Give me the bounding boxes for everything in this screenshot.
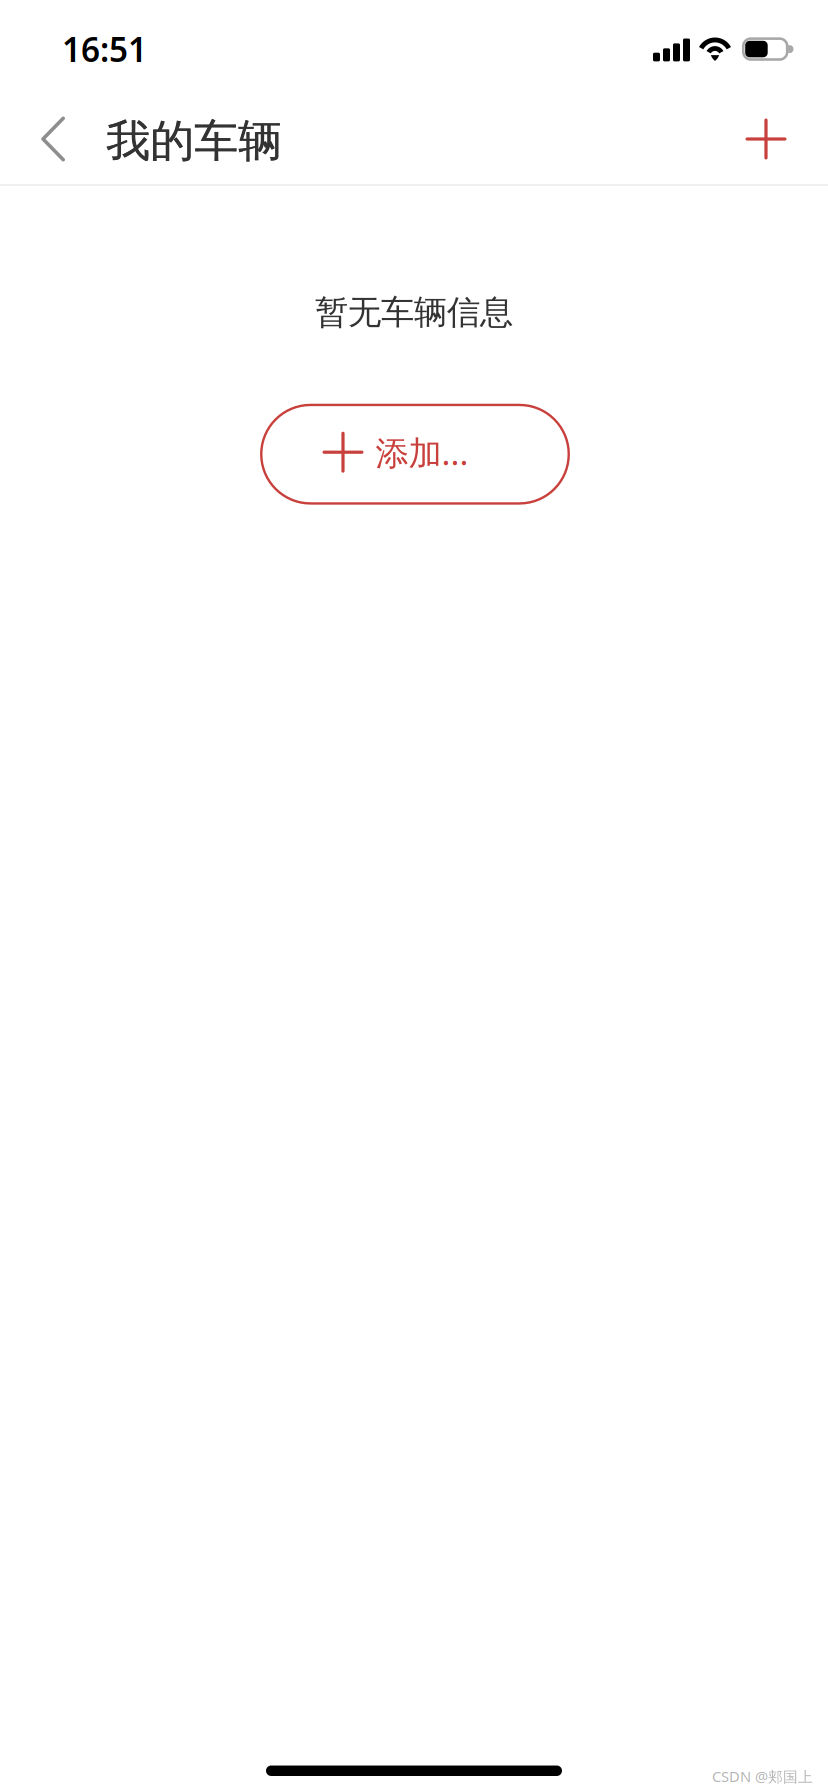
button[interactable]: 返回	[11, 92, 93, 184]
staticText: 暂无车辆信息	[315, 292, 513, 333]
button[interactable]: 添加...	[260, 405, 568, 503]
staticText: CSDN @郏国上	[712, 1766, 813, 1786]
staticText: 添加...	[375, 430, 468, 474]
button[interactable]: 添加车辆	[743, 92, 827, 184]
staticText: 我的车辆	[106, 114, 282, 168]
staticText: 16:51	[62, 27, 147, 71]
